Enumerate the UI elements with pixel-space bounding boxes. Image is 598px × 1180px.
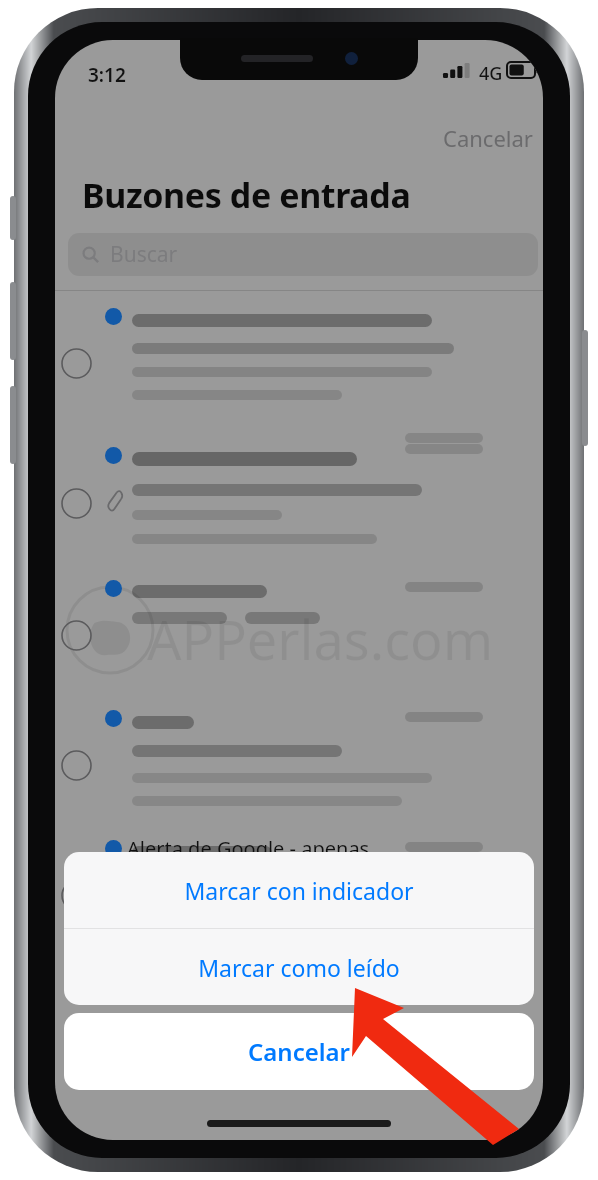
staticText: 4G — [479, 61, 503, 86]
staticText: Cancelar — [443, 123, 533, 153]
staticText: Marcar como leído — [198, 952, 400, 983]
button[interactable]: Cancelar — [64, 1013, 534, 1090]
button[interactable]: Marcar con indicador — [64, 852, 534, 928]
staticText: APPerlas.com — [147, 602, 494, 676]
staticText: Marcar con indicador — [184, 875, 414, 906]
staticText: Buzones de entrada — [82, 172, 411, 218]
staticText: Buscar — [110, 240, 178, 269]
staticText: Alerta de Google - apenas — [127, 835, 370, 862]
button[interactable]: Marcar como leído — [64, 929, 534, 1005]
staticText: 3:12 — [88, 62, 126, 88]
staticText: Cancelar — [248, 1035, 350, 1068]
button[interactable]: Cancelar — [423, 118, 533, 158]
